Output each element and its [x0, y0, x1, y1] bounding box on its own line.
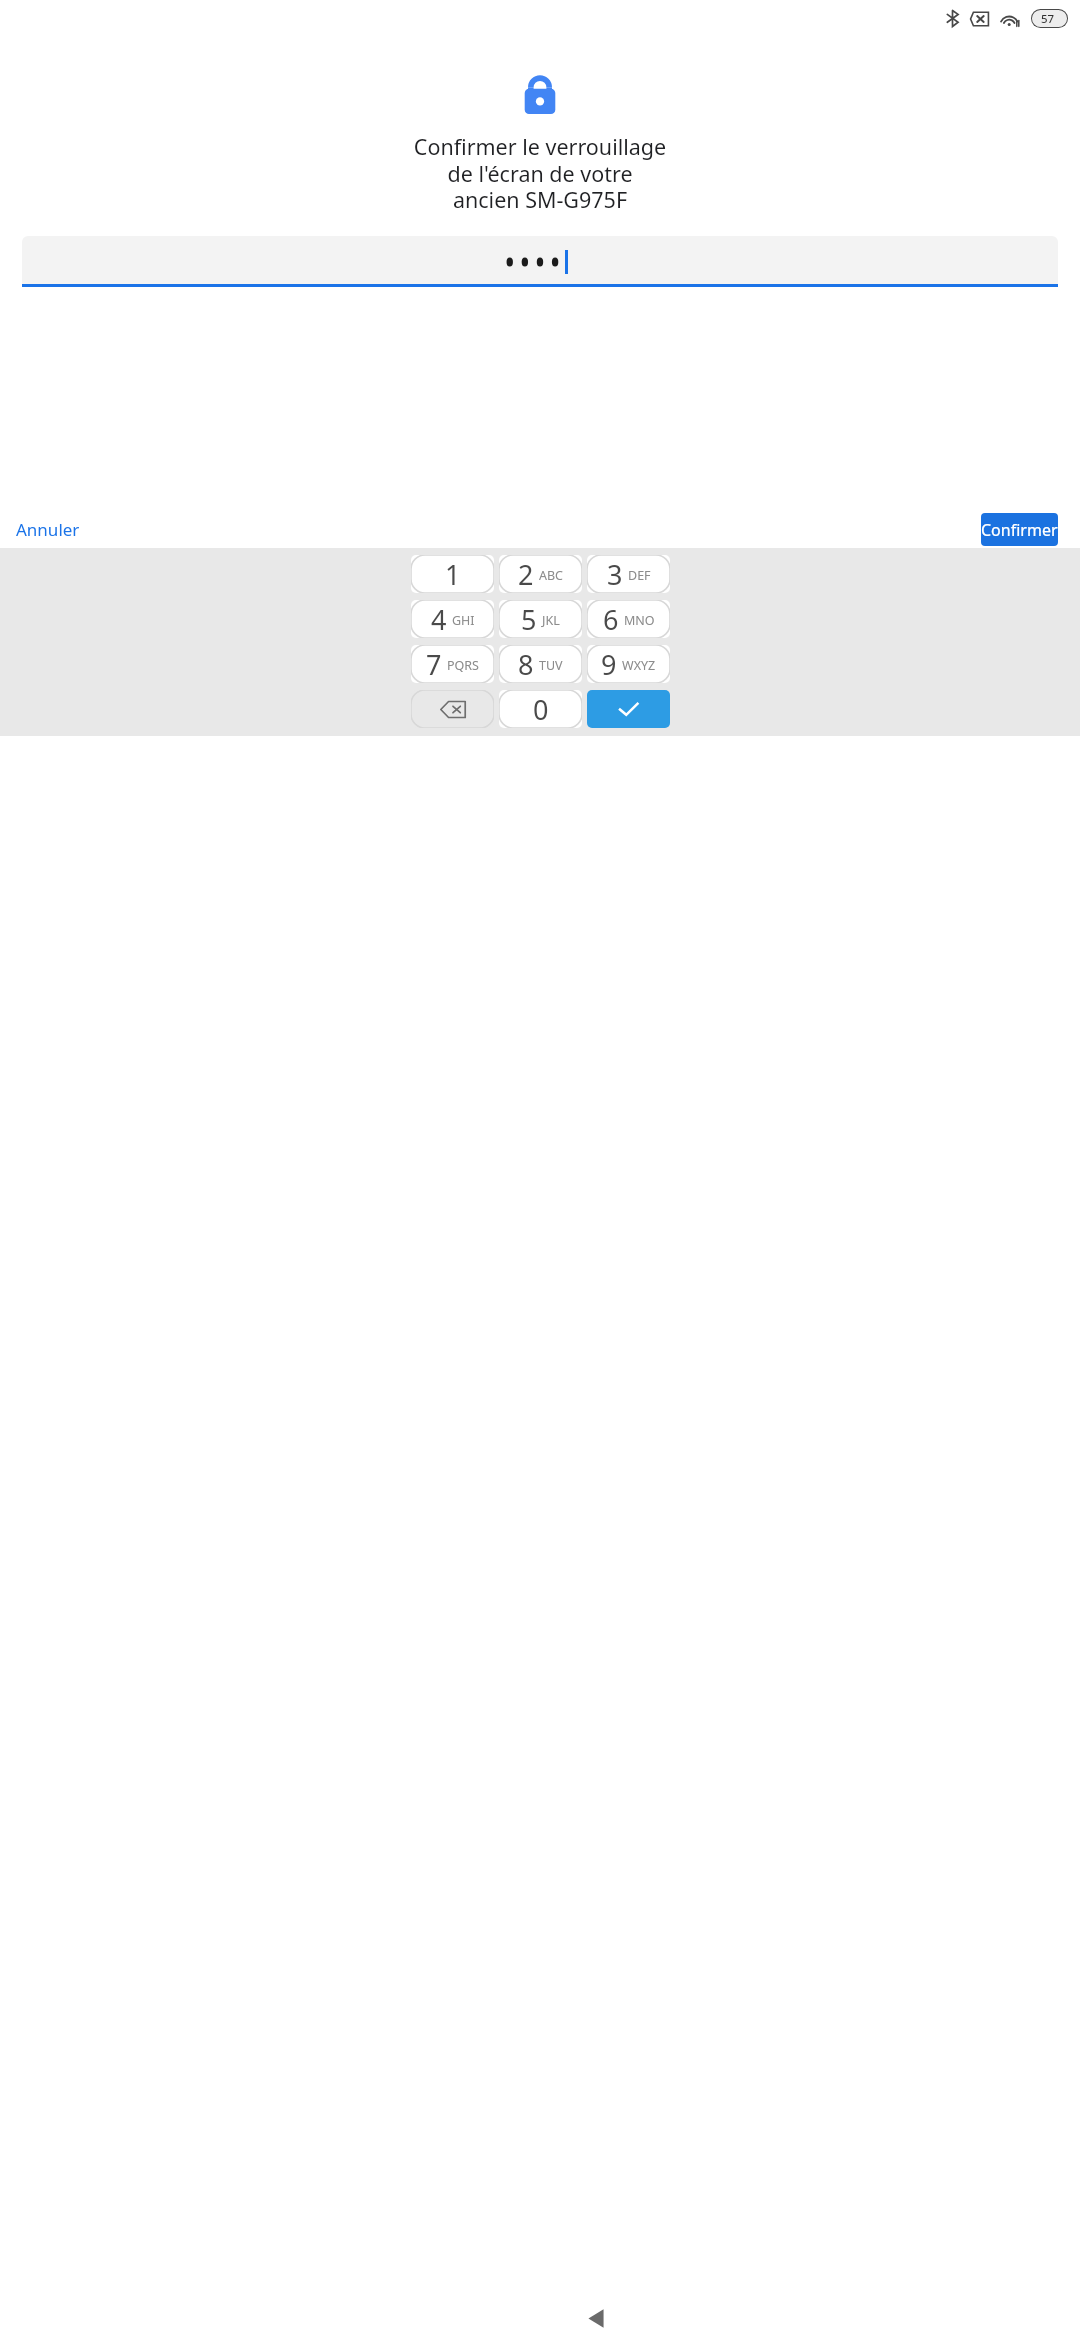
staticText: 5 — [521, 601, 537, 638]
staticText: PQRS — [447, 657, 479, 674]
staticText: TUV — [539, 657, 563, 674]
staticText: Annuler — [16, 518, 80, 541]
staticText: 57 — [1041, 11, 1055, 27]
button[interactable]: Supprimer — [411, 690, 494, 728]
button[interactable]: 1 — [411, 555, 494, 593]
button[interactable]: 7 — [411, 645, 494, 683]
staticText: 3 — [607, 556, 623, 593]
staticText: 9 — [601, 646, 617, 683]
button[interactable]: Valider — [587, 690, 670, 728]
button[interactable]: 9 — [587, 645, 670, 683]
button[interactable]: 3 — [587, 555, 670, 593]
button[interactable]: 2 — [499, 555, 582, 593]
staticText: 7 — [426, 646, 442, 683]
staticText: 4 — [431, 601, 447, 638]
staticText: WXYZ — [622, 657, 656, 674]
staticText: MNO — [624, 612, 655, 629]
staticText: Confirmer — [981, 519, 1058, 541]
staticText: 2 — [518, 556, 534, 593]
button[interactable]: 4 — [411, 600, 494, 638]
staticText: 6 — [603, 601, 619, 638]
button[interactable]: Annuler — [8, 510, 88, 549]
staticText: JKL — [542, 612, 560, 629]
staticText: Confirmer le verrouillage de l'écran de … — [412, 132, 668, 214]
staticText: GHI — [452, 612, 475, 629]
button[interactable]: 6 — [587, 600, 670, 638]
button[interactable]: 8 — [499, 645, 582, 683]
button[interactable] — [22, 236, 1058, 287]
staticText: 8 — [518, 646, 534, 683]
staticText: ABC — [539, 567, 564, 584]
staticText: 1 — [445, 556, 461, 593]
button[interactable]: 5 — [499, 600, 582, 638]
button[interactable]: Confirmer — [981, 513, 1058, 546]
staticText: DEF — [628, 567, 651, 584]
button[interactable]: 0 — [499, 690, 582, 728]
button[interactable]: Retour — [572, 2296, 620, 2340]
staticText: 0 — [533, 691, 549, 728]
